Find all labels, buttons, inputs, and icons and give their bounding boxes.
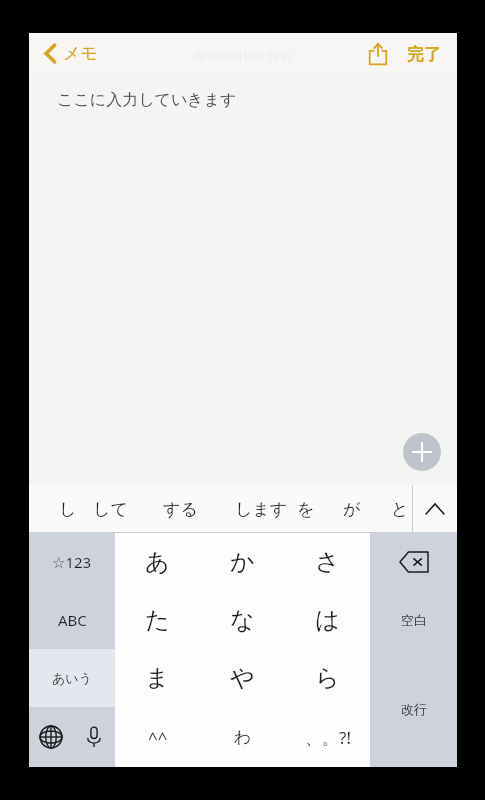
button[interactable]: キーボード切り替え (29, 707, 72, 767)
button[interactable]: 削除 (370, 533, 457, 591)
button[interactable]: して (87, 485, 134, 533)
staticText: 改行 (401, 701, 427, 717)
button[interactable]: 完了 (401, 40, 447, 69)
staticText: あ (145, 547, 170, 577)
button[interactable]: 空白 (370, 591, 457, 649)
button[interactable]: 共有 (363, 37, 393, 71)
button[interactable]: さ (285, 533, 370, 591)
staticText: あいう (52, 670, 92, 686)
button[interactable]: 音声入力 (72, 707, 115, 767)
staticText: 2016年2月10日 19:27 (194, 49, 293, 63)
staticText: ABC (58, 610, 87, 630)
button[interactable]: する (157, 485, 204, 533)
button[interactable]: た (115, 591, 200, 649)
button[interactable]: します (229, 485, 294, 533)
button[interactable]: ABC (29, 591, 115, 649)
button[interactable]: か (200, 533, 285, 591)
staticText: し (59, 499, 77, 520)
staticText: ま (145, 663, 170, 693)
staticText: わ (234, 727, 252, 748)
button[interactable]: や (200, 649, 285, 707)
staticText: が (343, 499, 361, 520)
staticText: メモ (63, 43, 98, 64)
button[interactable]: は (285, 591, 370, 649)
button[interactable]: わ (200, 707, 285, 767)
staticText: を (297, 499, 315, 520)
button[interactable]: あいう (29, 649, 115, 707)
button[interactable]: ☆123 (29, 533, 115, 591)
staticText: た (145, 605, 170, 635)
staticText: 、。?! (305, 726, 351, 749)
button[interactable]: を (291, 485, 321, 533)
button[interactable]: 改行 (370, 650, 457, 767)
staticText: か (230, 547, 255, 577)
button[interactable]: と (385, 485, 415, 533)
staticText: ^^ (148, 726, 168, 749)
button[interactable]: ま (115, 649, 200, 707)
button[interactable]: 追加 (403, 433, 441, 471)
button[interactable]: し (53, 485, 83, 533)
button[interactable]: あ (115, 533, 200, 591)
staticText: ☆123 (52, 552, 92, 572)
staticText: する (163, 499, 198, 520)
button[interactable]: 、。?! (285, 707, 370, 767)
staticText: 空白 (401, 612, 427, 628)
staticText: 完了 (407, 44, 441, 65)
button[interactable]: メモ (40, 39, 102, 68)
staticText: と (391, 499, 409, 520)
button[interactable]: 予測変換を開く (413, 485, 457, 533)
staticText: な (230, 605, 255, 635)
button[interactable]: な (200, 591, 285, 649)
staticText: ここに入力していきます (57, 90, 237, 110)
button[interactable]: が (337, 485, 367, 533)
staticText: さ (315, 547, 340, 577)
button[interactable]: ら (285, 649, 370, 707)
button[interactable]: ^^ (115, 707, 200, 767)
staticText: します (235, 499, 288, 520)
staticText: ら (315, 663, 340, 693)
staticText: や (230, 663, 255, 693)
staticText: は (315, 605, 340, 635)
staticText: して (93, 499, 128, 520)
